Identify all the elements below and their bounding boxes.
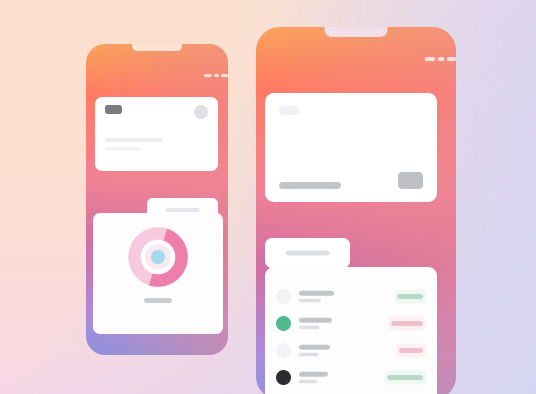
button[interactable] — [265, 283, 437, 310]
button[interactable] — [95, 97, 218, 171]
button[interactable] — [147, 198, 218, 222]
button[interactable] — [265, 364, 437, 391]
button[interactable] — [265, 310, 437, 337]
button[interactable] — [265, 93, 437, 202]
button[interactable] — [265, 337, 437, 364]
button[interactable] — [265, 238, 350, 268]
